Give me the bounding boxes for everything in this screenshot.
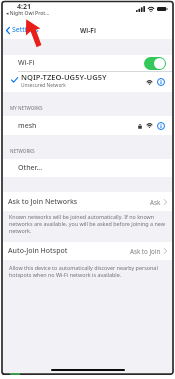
button[interactable]: Network info <box>157 78 165 86</box>
button[interactable]: Auto-Join Hotspot <box>3 242 172 260</box>
staticText: Settings <box>12 25 39 35</box>
button[interactable]: Wi-Fi <box>3 55 172 71</box>
staticText: Unsecured Network <box>21 82 66 89</box>
staticText: Ask to Join Networks <box>8 197 78 207</box>
staticText: ◂ Night Owl Prot… <box>6 10 50 17</box>
button[interactable]: Ask to Join Networks <box>3 192 172 211</box>
staticText: Other... <box>18 163 43 173</box>
staticText: 4:21 <box>17 2 31 12</box>
staticText: Allow this device to automatically disco… <box>9 264 172 278</box>
staticText: mesh <box>18 121 37 131</box>
staticText: Wi-Fi <box>18 58 35 68</box>
staticText: Ask to Join <box>130 247 161 255</box>
staticText: Auto-Join Hotspot <box>8 246 68 256</box>
staticText: NQIP-TZEO-UG5Y-UG5Y <box>21 72 107 82</box>
button[interactable]: mesh <box>3 116 172 135</box>
button[interactable]: Settings <box>6 25 39 35</box>
staticText: NETWORKS <box>10 148 35 154</box>
staticText: Ask <box>150 198 161 206</box>
staticText: MY NETWORKS <box>10 105 43 111</box>
staticText: Wi-Fi <box>80 26 96 35</box>
button[interactable]: Wi-Fi on <box>144 57 166 70</box>
button[interactable]: Other... <box>3 159 172 177</box>
button[interactable]: Network info <box>157 122 165 130</box>
staticText: Known networks will be joined automatica… <box>9 213 170 234</box>
button[interactable]: NQIP-TZEO-UG5Y-UG5Y <box>3 72 172 92</box>
